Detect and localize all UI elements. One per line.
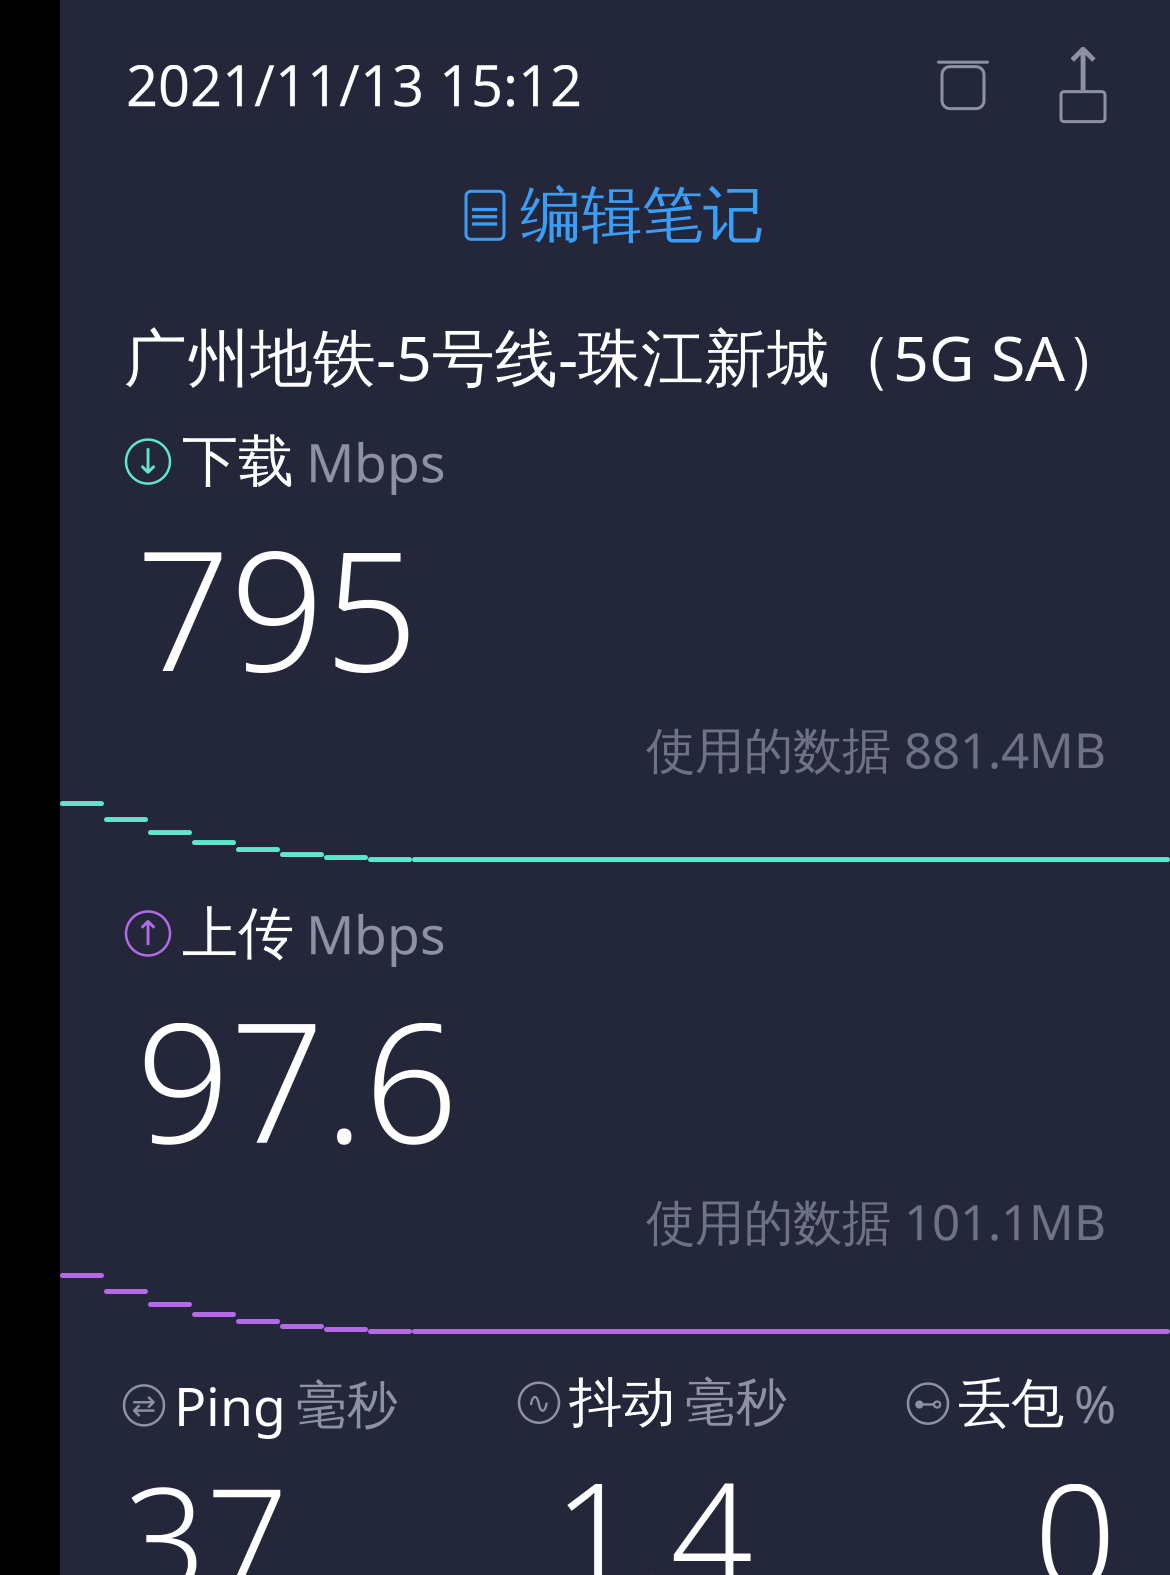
staticText: 0 bbox=[1034, 1437, 1116, 1575]
staticText: ↑ bbox=[133, 914, 162, 953]
staticText: ⊷ bbox=[913, 1387, 942, 1420]
staticText: % bbox=[1074, 1370, 1116, 1437]
staticText: Mbps bbox=[306, 426, 446, 497]
staticText: 97.6 bbox=[136, 969, 458, 1188]
staticText: 编辑笔记 bbox=[520, 178, 764, 253]
staticText: ↓ bbox=[133, 442, 162, 481]
staticText: 1.4 bbox=[553, 1435, 752, 1575]
staticText: 上传 bbox=[182, 899, 294, 968]
staticText: 795 bbox=[136, 497, 418, 717]
button[interactable]: ≡ bbox=[446, 164, 784, 267]
staticText: ↑ bbox=[1058, 36, 1107, 103]
staticText: ≡ bbox=[468, 193, 502, 238]
staticText: 丢包 bbox=[958, 1371, 1064, 1436]
staticText: 广州地铁-5号线-珠江新城（5G SA） bbox=[124, 315, 1128, 398]
staticText: 2021/11/13 15:12 bbox=[126, 47, 582, 122]
staticText: Mbps bbox=[306, 898, 446, 969]
staticText: 毫秒 bbox=[296, 1374, 398, 1436]
staticText: ⇄ bbox=[131, 1389, 156, 1422]
staticText: Ping bbox=[174, 1370, 286, 1441]
button[interactable]: 分享 bbox=[1038, 40, 1128, 130]
staticText: 毫秒 bbox=[685, 1372, 787, 1434]
staticText: 抖动 bbox=[569, 1370, 675, 1435]
staticText: 使用的数据 101.1MB bbox=[646, 1188, 1106, 1254]
staticText: ∿ bbox=[526, 1386, 551, 1419]
button[interactable]: 删除 bbox=[918, 40, 1008, 130]
staticText: 下载 bbox=[182, 427, 294, 496]
staticText: 37 bbox=[124, 1441, 288, 1575]
staticText: 使用的数据 881.4MB bbox=[646, 717, 1106, 782]
